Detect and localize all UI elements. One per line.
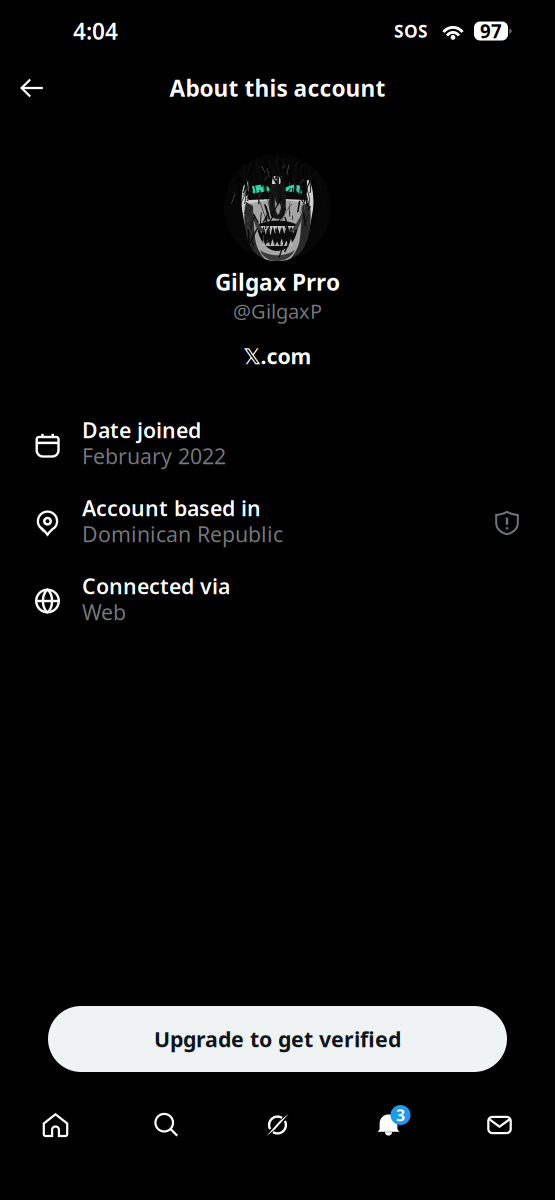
button[interactable]: Search xyxy=(111,1101,222,1149)
staticText: Connected via xyxy=(82,572,230,600)
button[interactable]: Upgrade to get verified xyxy=(48,1006,507,1072)
button[interactable]: Notifications xyxy=(333,1101,444,1149)
button[interactable]: Home xyxy=(0,1101,111,1149)
staticText: @GilgaxP xyxy=(233,298,322,324)
staticText: Upgrade to get verified xyxy=(154,1025,401,1053)
staticText: SOS xyxy=(394,19,428,42)
staticText: About this account xyxy=(169,73,385,103)
staticText: Web xyxy=(82,598,126,626)
button[interactable]: Back xyxy=(0,64,64,112)
staticText: 𝕏.com xyxy=(243,342,311,370)
button[interactable]: Messages xyxy=(444,1101,555,1149)
staticText: 97 xyxy=(480,19,502,43)
staticText: Date joined xyxy=(82,416,201,444)
staticText: Account based in xyxy=(82,494,261,522)
staticText: 4:04 xyxy=(73,16,118,46)
staticText: Gilgax Prro xyxy=(215,267,340,297)
staticText: Dominican Republic xyxy=(82,520,283,548)
staticText: February 2022 xyxy=(82,442,226,470)
staticText: 3 xyxy=(396,1104,405,1126)
button[interactable]: Grok xyxy=(222,1101,333,1149)
